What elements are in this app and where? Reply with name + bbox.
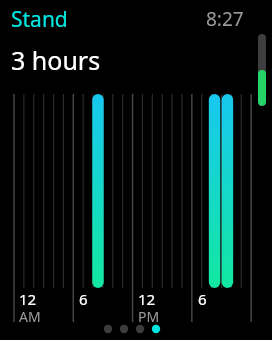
staticText: 6: [79, 289, 88, 309]
button[interactable]: Stand: [11, 5, 68, 34]
staticText: AM: [19, 307, 41, 326]
staticText: PM: [138, 307, 160, 326]
staticText: 12: [138, 289, 156, 309]
staticText: 6: [198, 289, 207, 309]
staticText: 8:27: [206, 6, 244, 32]
staticText: Stand: [11, 5, 68, 34]
button[interactable]: Page 4 of 4: [100, 322, 164, 336]
staticText: 3 hours: [11, 43, 101, 77]
button[interactable]: 3 hours: [11, 43, 101, 77]
staticText: 12: [19, 289, 37, 309]
